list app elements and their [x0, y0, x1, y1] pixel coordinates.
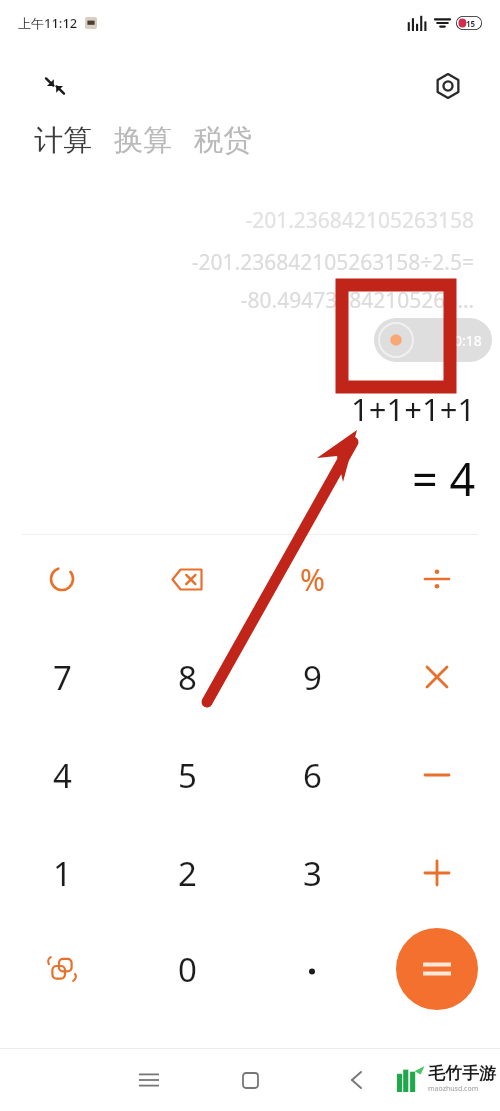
staticText: 上午11:12 — [18, 14, 78, 32]
button[interactable]: Back — [333, 1057, 379, 1103]
staticText: 5 — [178, 753, 197, 798]
staticText: 换算 — [114, 122, 172, 159]
staticText: 0 — [178, 947, 197, 992]
staticText: 3 — [303, 851, 322, 896]
button[interactable]: 税贷 — [194, 122, 252, 159]
button[interactable]: Plus — [392, 839, 482, 907]
button[interactable]: Clear — [17, 545, 107, 613]
staticText: 4 — [53, 753, 72, 798]
staticText: 15 — [466, 18, 476, 29]
staticText: 税贷 — [194, 122, 252, 159]
button[interactable]: 计算 — [34, 122, 92, 159]
button[interactable]: 换算 — [114, 122, 172, 159]
button[interactable]: Recents — [227, 1057, 273, 1103]
button[interactable]: Divide — [392, 545, 482, 613]
staticText: 0:18 — [454, 331, 482, 350]
button[interactable]: Multiply — [392, 643, 482, 711]
button[interactable]: Settings — [424, 62, 472, 110]
staticText: 8 — [178, 655, 197, 700]
button[interactable]: 0 — [142, 935, 232, 1003]
button[interactable]: 4 — [17, 741, 107, 809]
staticText: -80.494736842105263… — [240, 286, 474, 315]
button[interactable]: Backspace — [142, 545, 232, 613]
staticText: 7 — [53, 655, 72, 700]
button[interactable]: Decimal point — [267, 935, 357, 1003]
staticText: % — [300, 559, 325, 600]
button[interactable]: 1 — [17, 839, 107, 907]
staticText: 1+1+1+1 — [351, 388, 476, 430]
staticText: 1 — [53, 851, 72, 896]
button[interactable]: 6 — [267, 741, 357, 809]
button[interactable]: 7 — [17, 643, 107, 711]
staticText: -201.236842105263158 — [245, 206, 474, 235]
staticText: = 4 — [412, 448, 476, 509]
button[interactable]: 8 — [142, 643, 232, 711]
button[interactable]: 2 — [142, 839, 232, 907]
button[interactable]: 0:18 — [374, 318, 492, 362]
staticText: 计算 — [34, 122, 92, 159]
button[interactable]: 5 — [142, 741, 232, 809]
button[interactable]: % — [267, 545, 357, 613]
staticText: -201.236842105263158÷2.5= — [191, 248, 474, 277]
button[interactable]: Collapse — [36, 67, 74, 105]
staticText: 2 — [178, 851, 197, 896]
button[interactable]: 3 — [267, 839, 357, 907]
staticText: 9 — [303, 655, 322, 700]
button[interactable]: Menu — [126, 1057, 172, 1103]
staticText: 6 — [303, 753, 322, 798]
button[interactable]: Equals — [396, 928, 478, 1010]
button[interactable]: Convert — [17, 935, 107, 1003]
button[interactable]: Minus — [392, 741, 482, 809]
button[interactable]: 9 — [267, 643, 357, 711]
staticText: 毛竹手游 — [428, 1063, 496, 1084]
staticText: maozhusd.com — [428, 1084, 479, 1094]
